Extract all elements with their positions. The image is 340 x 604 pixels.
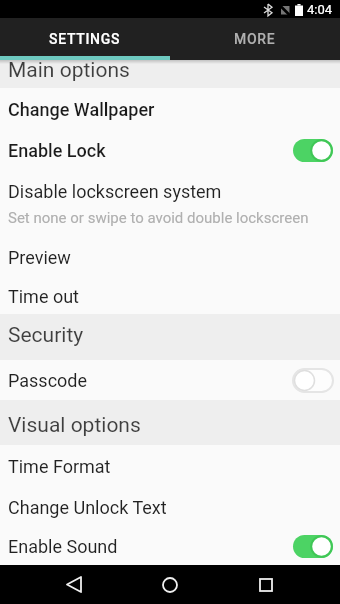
staticText: SETTINGS [49,31,121,47]
button[interactable]: Change Wallpaper [0,88,340,130]
staticText: Disable lockscreen system [8,181,222,202]
button[interactable]: Preview [0,237,340,278]
button[interactable]: Passcode [0,360,340,400]
staticText: Enable Sound [8,536,118,557]
button[interactable]: Change Unlock Text [0,487,340,528]
staticText: Set none or swipe to avoid double locksc… [8,209,309,227]
staticText: Main options [8,58,130,83]
button[interactable]: Enable Sound [0,528,340,565]
staticText: Change Unlock Text [8,497,167,518]
staticText: Enable Lock [8,140,106,161]
staticText: Preview [8,247,71,268]
button[interactable] [122,565,218,604]
button[interactable]: Time Format [0,445,340,487]
button[interactable]: MORE [170,18,340,60]
staticText: Time Format [8,456,111,477]
staticText: Time out [8,286,79,307]
button[interactable]: Time out [0,278,340,314]
button[interactable] [26,565,122,604]
button[interactable]: Disable lockscreen system [0,171,340,237]
staticText: MORE [234,31,276,47]
staticText: Visual options [8,413,141,438]
button[interactable]: SETTINGS [0,18,170,60]
staticText: Security [8,323,84,348]
staticText: 4:04 [307,2,333,17]
button[interactable]: Enable Lock [0,130,340,171]
staticText: Passcode [8,370,88,391]
staticText: Change Wallpaper [8,99,155,120]
button[interactable] [218,565,314,604]
